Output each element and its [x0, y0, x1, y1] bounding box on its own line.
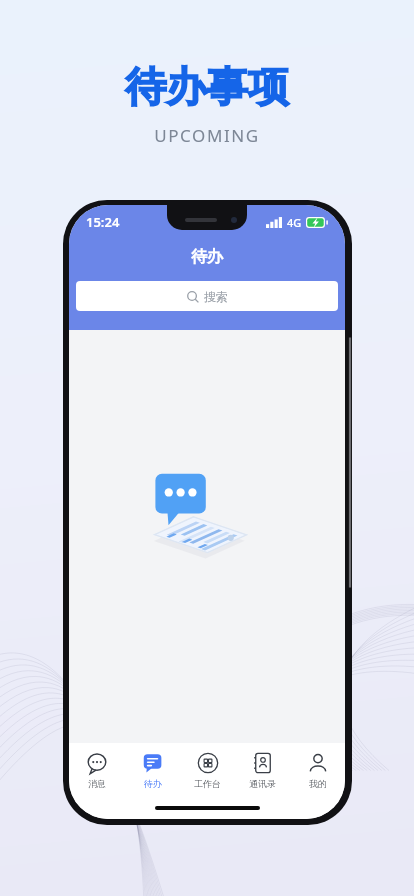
- staticText: 待办: [191, 247, 223, 267]
- button[interactable]: 通讯录: [235, 752, 290, 789]
- staticText: 4G: [287, 215, 302, 230]
- staticText: UPCOMING: [154, 124, 260, 147]
- staticText: 通讯录: [249, 778, 276, 789]
- button[interactable]: 搜索: [76, 281, 338, 311]
- staticText: 工作台: [194, 778, 221, 789]
- button[interactable]: 工作台: [180, 752, 235, 789]
- button[interactable]: 我的: [290, 752, 345, 789]
- button[interactable]: 消息: [69, 752, 125, 789]
- staticText: 待办事项: [125, 62, 289, 114]
- staticText: 消息: [88, 778, 106, 789]
- staticText: 待办: [144, 778, 162, 789]
- staticText: 搜索: [204, 289, 228, 304]
- button[interactable]: 待办: [125, 752, 180, 789]
- staticText: 我的: [309, 778, 327, 789]
- staticText: 15:24: [86, 213, 120, 231]
